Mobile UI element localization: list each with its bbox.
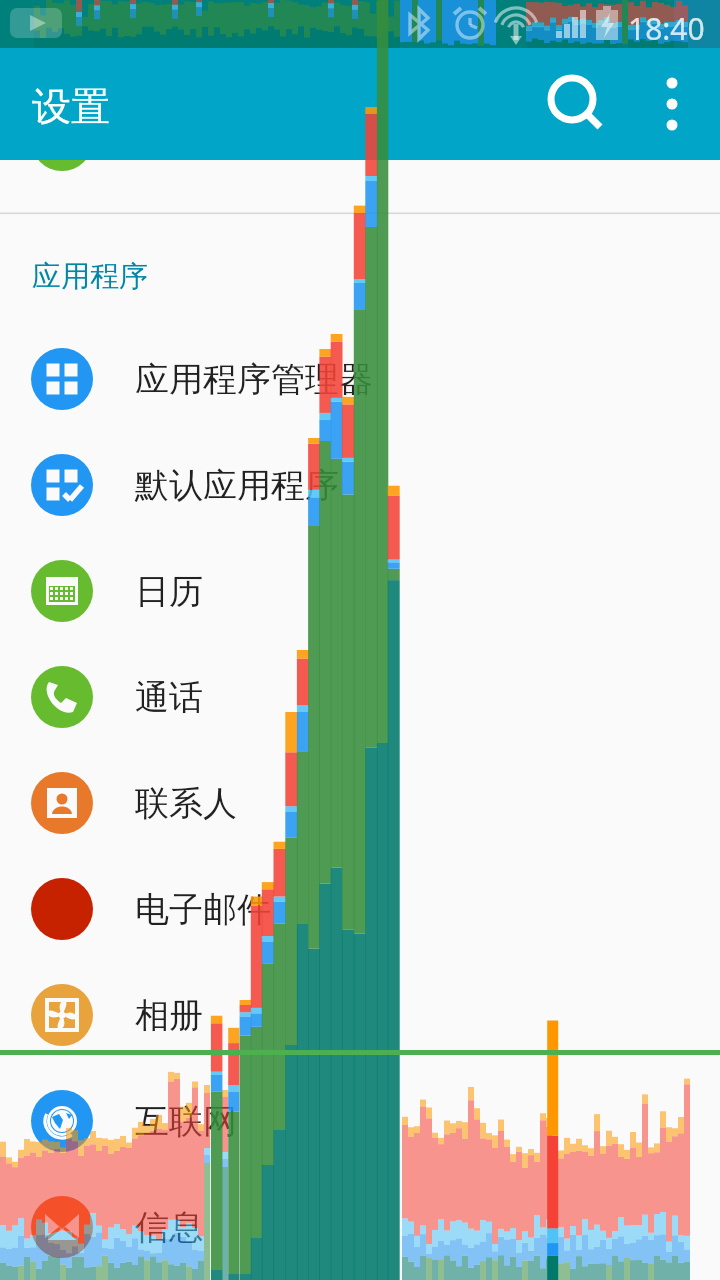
button[interactable]: 电子邮件: [0, 856, 720, 962]
staticText: 默认应用程序: [135, 464, 339, 507]
button[interactable]: 相册: [0, 962, 720, 1068]
button[interactable]: More options: [616, 48, 720, 152]
staticText: 18:40: [628, 8, 705, 49]
button[interactable]: 应用程序管理器: [0, 326, 720, 432]
button[interactable]: 联系人: [0, 750, 720, 856]
staticText: 联系人: [135, 782, 237, 825]
button[interactable]: 默认应用程序: [0, 432, 720, 538]
staticText: 电子邮件: [135, 888, 271, 931]
button[interactable]: Search: [520, 48, 632, 160]
button[interactable]: 日历: [0, 538, 720, 644]
staticText: 设置: [32, 82, 110, 131]
staticText: 互联网: [135, 1100, 237, 1143]
staticText: 通话: [135, 676, 203, 719]
staticText: 应用程序管理器: [135, 358, 373, 401]
staticText: 日历: [135, 570, 203, 613]
staticText: 相册: [135, 994, 203, 1037]
staticText: 应用程序: [32, 258, 148, 295]
button[interactable]: 互联网: [0, 1068, 720, 1174]
staticText: 信息: [135, 1206, 203, 1249]
button[interactable]: 信息: [0, 1174, 720, 1280]
button[interactable]: 通话: [0, 644, 720, 750]
